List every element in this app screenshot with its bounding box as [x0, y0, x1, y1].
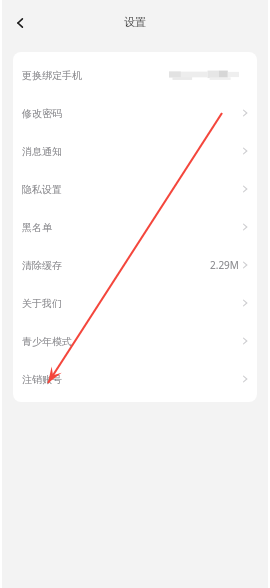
button[interactable]: 清除缓存 [13, 246, 257, 284]
button[interactable]: 修改密码 [13, 94, 257, 132]
button[interactable]: 消息通知 [13, 132, 257, 170]
staticText: 注销账号 [22, 373, 62, 386]
staticText: 更换绑定手机 [22, 69, 82, 82]
staticText: 清除缓存 [22, 259, 62, 272]
button[interactable]: 隐私设置 [13, 170, 257, 208]
button[interactable]: 关于我们 [13, 284, 257, 322]
staticText: 2.29M [210, 258, 239, 272]
button[interactable]: 青少年模式 [13, 322, 257, 360]
button[interactable]: 黑名单 [13, 208, 257, 246]
staticText: 修改密码 [22, 107, 62, 120]
staticText: 关于我们 [22, 297, 62, 310]
staticText: 隐私设置 [22, 183, 62, 196]
staticText: 设置 [124, 15, 146, 29]
staticText: 消息通知 [22, 145, 62, 158]
button[interactable]: 更换绑定手机 [13, 56, 257, 94]
button[interactable]: 注销账号 [13, 360, 257, 398]
staticText: 青少年模式 [22, 335, 72, 348]
staticText: 黑名单 [22, 221, 52, 234]
button[interactable]: Back [8, 10, 34, 36]
